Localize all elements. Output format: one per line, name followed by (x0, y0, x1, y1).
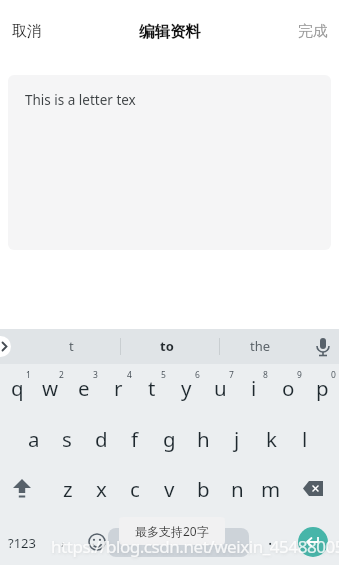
button[interactable]: ?123 (0, 523, 44, 563)
button[interactable]: n (220, 466, 254, 512)
staticText: j (234, 425, 240, 453)
button[interactable] (8, 475, 36, 503)
staticText: 取消 (12, 22, 42, 41)
button[interactable]: s (50, 416, 84, 462)
button[interactable]: f (118, 416, 152, 462)
button[interactable]: u (203, 365, 237, 411)
button[interactable]: to (137, 329, 197, 363)
staticText: a (28, 425, 40, 453)
staticText: 6 (195, 369, 200, 381)
button[interactable]: z (51, 466, 85, 512)
staticText: o (282, 374, 295, 402)
button[interactable]: , (49, 519, 77, 559)
button[interactable]: 取消 (0, 22, 42, 41)
staticText: h (197, 425, 210, 453)
staticText: 完成 (298, 22, 328, 41)
staticText: f (131, 425, 139, 453)
button[interactable]: l (288, 416, 322, 462)
staticText: c (130, 475, 140, 503)
staticText: . (268, 528, 273, 550)
button[interactable]: i (237, 365, 271, 411)
staticText: 1 (26, 369, 31, 381)
staticText: to (160, 337, 174, 355)
staticText: s (62, 425, 72, 453)
button[interactable]: the (230, 329, 290, 363)
button[interactable] (298, 527, 328, 557)
staticText: 8 (263, 369, 268, 381)
button[interactable]: k (254, 416, 288, 462)
staticText: 编辑资料 (139, 22, 201, 42)
button[interactable]: . (256, 519, 284, 559)
staticText: the (250, 337, 271, 355)
staticText: b (197, 475, 210, 503)
button[interactable]: r (101, 365, 135, 411)
staticText: n (231, 475, 244, 503)
staticText: m (261, 475, 281, 503)
button[interactable]: b (186, 466, 220, 512)
staticText: d (95, 425, 108, 453)
button[interactable] (108, 528, 249, 557)
staticText: , (61, 528, 66, 550)
button[interactable]: j (220, 416, 254, 462)
button[interactable]: m (254, 466, 288, 512)
button[interactable]: y (169, 365, 203, 411)
staticText: 3 (93, 369, 98, 381)
button[interactable] (313, 333, 333, 360)
button[interactable]: x (84, 466, 118, 512)
button[interactable]: q (0, 365, 34, 411)
button[interactable]: v (152, 466, 186, 512)
staticText: https://blog.csdn.net/weixin_45488005 (51, 535, 339, 558)
staticText: v (164, 475, 175, 503)
button[interactable] (0, 336, 11, 357)
button[interactable]: p (305, 365, 339, 411)
button[interactable]: t (41, 329, 101, 363)
staticText: 9 (297, 369, 302, 381)
staticText: 5 (161, 369, 166, 381)
button[interactable] (84, 529, 110, 555)
staticText: q (11, 374, 24, 402)
button[interactable]: a (17, 416, 51, 462)
button[interactable]: c (118, 466, 152, 512)
staticText: y (181, 374, 192, 402)
button[interactable]: t (135, 365, 169, 411)
staticText: g (163, 425, 176, 453)
button[interactable]: h (186, 416, 220, 462)
button[interactable]: 完成 (298, 22, 339, 41)
staticText: w (42, 374, 59, 402)
staticText: u (214, 374, 227, 402)
staticText: 7 (229, 369, 234, 381)
button[interactable]: w (33, 365, 67, 411)
staticText: ?123 (8, 534, 36, 552)
staticText: This is a letter tex (25, 91, 136, 109)
staticText: z (63, 475, 73, 503)
staticText: i (251, 374, 257, 402)
staticText: 0 (331, 369, 336, 381)
button[interactable]: This is a letter tex (8, 75, 331, 250)
button[interactable]: e (67, 365, 101, 411)
button[interactable] (300, 475, 328, 503)
staticText: x (96, 475, 107, 503)
staticText: r (114, 374, 123, 402)
button[interactable]: o (271, 365, 305, 411)
staticText: 2 (59, 369, 64, 381)
button[interactable]: g (152, 416, 186, 462)
staticText: k (266, 425, 277, 453)
staticText: 最多支持20字 (135, 523, 209, 539)
staticText: t (148, 374, 156, 402)
staticText: 4 (127, 369, 132, 381)
staticText: p (316, 374, 329, 402)
staticText: e (78, 374, 90, 402)
button[interactable]: d (84, 416, 118, 462)
staticText: l (302, 425, 308, 453)
staticText: t (69, 337, 74, 355)
